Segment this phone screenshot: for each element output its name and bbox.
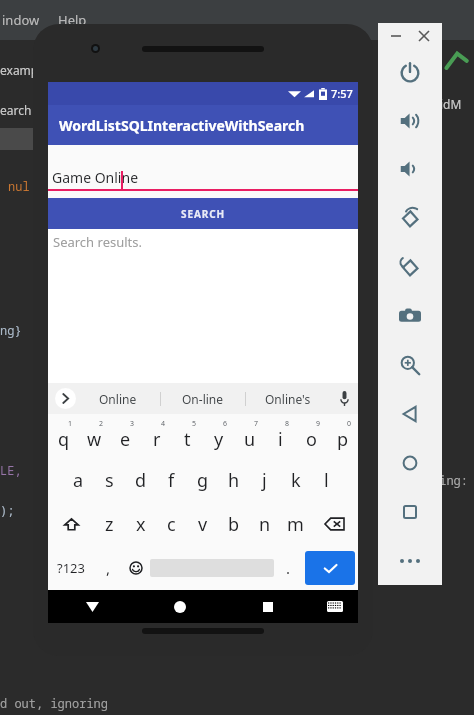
- staticText: j: [262, 468, 267, 493]
- button[interactable]: Rotate left: [378, 193, 442, 242]
- staticText: d: [135, 468, 147, 493]
- button[interactable]: Online: [76, 383, 160, 414]
- button[interactable]: Emoji: [122, 546, 150, 590]
- button[interactable]: 3: [110, 414, 141, 458]
- button[interactable]: More suggestions: [55, 388, 76, 409]
- staticText: h: [228, 468, 240, 493]
- button[interactable]: WordListSQLInteractiveWithSearch: [48, 105, 358, 145]
- staticText: f: [168, 468, 175, 493]
- button[interactable]: On-line: [161, 383, 245, 414]
- staticText: 7:57: [331, 86, 353, 101]
- staticText: );: [0, 502, 15, 518]
- button[interactable]: Space: [150, 546, 274, 590]
- staticText: b: [228, 512, 240, 537]
- staticText: ving:: [432, 472, 469, 488]
- staticText: i: [278, 427, 283, 452]
- button[interactable]: g: [187, 458, 218, 502]
- staticText: 1: [68, 419, 73, 429]
- staticText: 2: [99, 419, 104, 429]
- staticText: WordListSQLInteractiveWithSearch: [59, 116, 305, 135]
- staticText: s: [105, 468, 114, 493]
- staticText: SEARCH: [181, 207, 226, 221]
- button[interactable]: Power: [378, 49, 442, 97]
- button[interactable]: 2: [79, 414, 110, 458]
- button[interactable]: ?123: [48, 546, 94, 590]
- button[interactable]: 9: [296, 414, 327, 458]
- staticText: ?123: [57, 559, 85, 577]
- button[interactable]: Game Online: [48, 145, 358, 198]
- button[interactable]: c: [156, 502, 187, 546]
- staticText: LE,: [0, 462, 22, 478]
- staticText: examp: [0, 62, 39, 78]
- staticText: 5: [192, 419, 197, 429]
- button[interactable]: ,: [94, 546, 122, 590]
- button[interactable]: n: [249, 502, 280, 546]
- button[interactable]: j: [249, 458, 280, 502]
- staticText: q: [58, 427, 70, 452]
- button[interactable]: Online's: [246, 383, 330, 414]
- button[interactable]: Home: [136, 590, 224, 623]
- button[interactable]: Minimize: [386, 26, 406, 46]
- button[interactable]: Shift: [48, 502, 94, 546]
- button[interactable]: 8: [265, 414, 296, 458]
- button[interactable]: Hide keyboard: [312, 590, 358, 623]
- button[interactable]: Done: [305, 551, 355, 585]
- staticText: ng}: [0, 322, 22, 338]
- staticText: 7: [254, 419, 259, 429]
- staticText: a: [73, 468, 84, 493]
- staticText: 8: [285, 419, 290, 429]
- staticText: nul: [8, 178, 30, 194]
- button[interactable]: k: [280, 458, 311, 502]
- button[interactable]: v: [187, 502, 218, 546]
- button[interactable]: Volume down: [378, 145, 442, 193]
- staticText: t: [184, 427, 191, 452]
- staticText: ,: [106, 558, 111, 578]
- button[interactable]: Voice input: [330, 383, 358, 414]
- button[interactable]: m: [280, 502, 311, 546]
- button[interactable]: Backspace: [311, 502, 358, 546]
- button[interactable]: s: [94, 458, 125, 502]
- button[interactable]: 5: [172, 414, 203, 458]
- button[interactable]: SEARCH: [48, 198, 358, 229]
- button[interactable]: f: [156, 458, 187, 502]
- staticText: On-line: [182, 391, 224, 407]
- button[interactable]: .: [274, 546, 302, 590]
- button[interactable]: 0: [327, 414, 358, 458]
- button[interactable]: Back: [48, 590, 136, 623]
- staticText: l: [324, 468, 329, 493]
- button[interactable]: More: [378, 536, 442, 585]
- button[interactable]: 4: [141, 414, 172, 458]
- staticText: 6: [223, 419, 228, 429]
- button[interactable]: Screenshot: [378, 291, 442, 340]
- button[interactable]: Overview: [378, 487, 442, 536]
- button[interactable]: x: [125, 502, 156, 546]
- button[interactable]: Rotate right: [378, 242, 442, 291]
- button[interactable]: l: [311, 458, 342, 502]
- button[interactable]: Back: [378, 389, 442, 438]
- button[interactable]: Home: [378, 438, 442, 487]
- button[interactable]: Recents: [224, 590, 312, 623]
- button[interactable]: 6: [203, 414, 234, 458]
- staticText: .: [286, 558, 291, 578]
- staticText: r: [153, 427, 161, 452]
- button[interactable]: h: [218, 458, 249, 502]
- staticText: 9: [316, 419, 321, 429]
- staticText: e: [120, 427, 131, 452]
- staticText: Help: [58, 11, 87, 29]
- staticText: 3: [130, 419, 135, 429]
- button[interactable]: Volume up: [378, 97, 442, 145]
- staticText: y: [214, 427, 224, 452]
- button[interactable]: b: [218, 502, 249, 546]
- button[interactable]: z: [94, 502, 125, 546]
- staticText: Game Online: [52, 168, 139, 187]
- button[interactable]: Zoom: [378, 340, 442, 389]
- button[interactable]: a: [63, 458, 94, 502]
- button[interactable]: 7: [234, 414, 265, 458]
- button[interactable]: d: [125, 458, 156, 502]
- staticText: c: [167, 512, 176, 537]
- staticText: n: [259, 512, 271, 537]
- staticText: Online: [99, 391, 137, 407]
- button[interactable]: Close: [414, 26, 434, 46]
- staticText: x: [136, 512, 146, 537]
- button[interactable]: 1: [48, 414, 79, 458]
